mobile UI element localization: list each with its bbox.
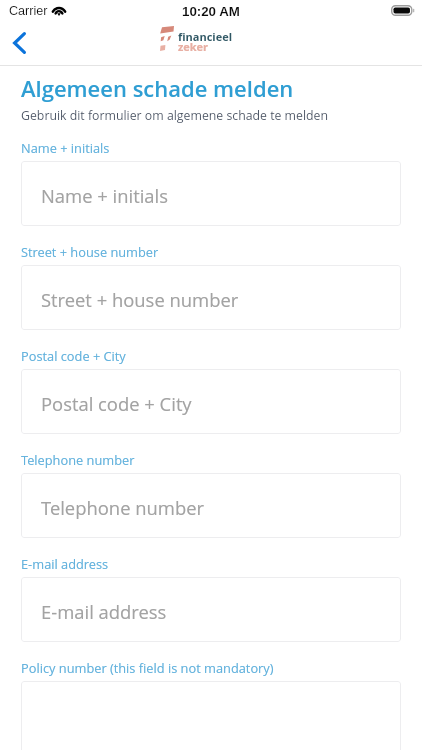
staticText: Telephone number xyxy=(41,495,205,520)
button[interactable]: Telephone number xyxy=(21,473,401,538)
staticText: Street + house number xyxy=(21,243,159,260)
staticText: zeker xyxy=(178,39,208,54)
staticText: Postal code + City xyxy=(21,347,126,364)
staticText: Carrier xyxy=(9,4,48,18)
button[interactable]: Name + initials xyxy=(21,161,401,226)
staticText: Gebruik dit formulier om algemene schade… xyxy=(21,107,329,124)
staticText: Algemeen schade melden xyxy=(21,73,294,103)
staticText: Street + house number xyxy=(41,287,239,312)
staticText: 10:20 AM xyxy=(182,4,240,19)
staticText: financieel xyxy=(178,29,233,44)
staticText: Postal code + City xyxy=(41,391,192,416)
button[interactable]: Street + house number xyxy=(21,265,401,330)
button[interactable]: Postal code + City xyxy=(21,369,401,434)
staticText: Policy number (this field is not mandato… xyxy=(21,659,274,676)
button[interactable]: E-mail address xyxy=(21,577,401,642)
button[interactable]: Back xyxy=(0,24,40,65)
staticText: E-mail address xyxy=(41,599,167,624)
staticText: Telephone number xyxy=(21,451,135,468)
staticText: Name + initials xyxy=(21,139,110,156)
staticText: Name + initials xyxy=(41,183,168,208)
staticText: E-mail address xyxy=(21,555,109,572)
